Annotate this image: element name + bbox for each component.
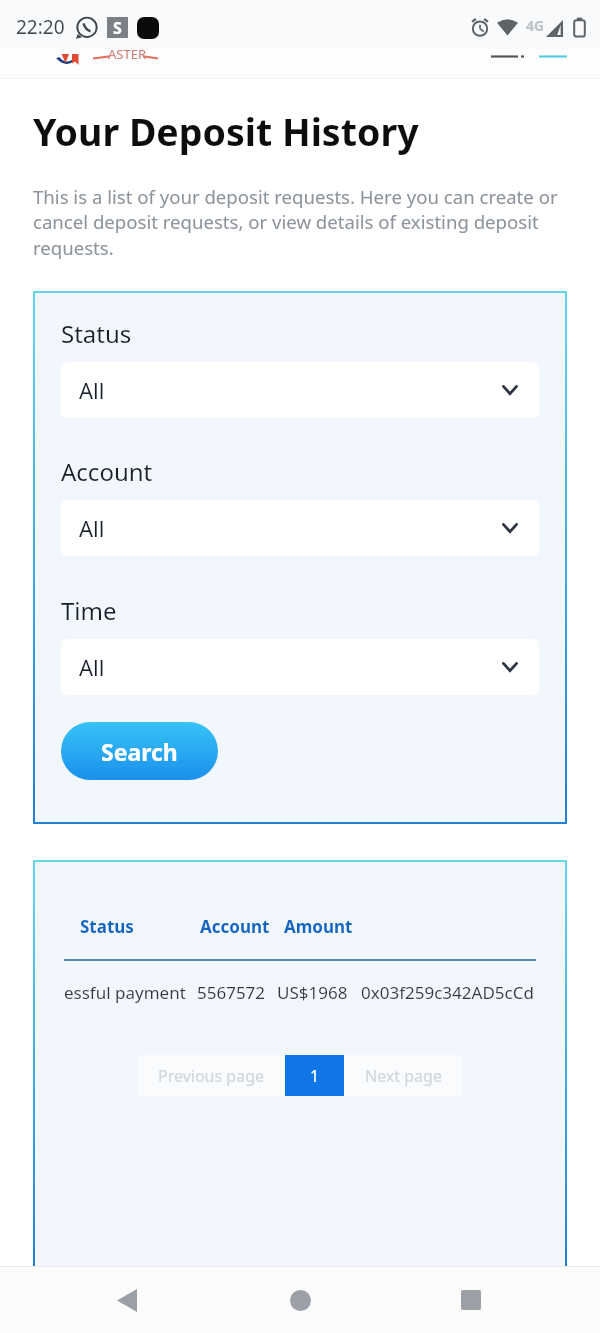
staticText: Time [61,594,117,627]
button[interactable]: Next page [344,1055,462,1096]
staticText: essful payment [64,981,197,1004]
staticText: All [79,652,105,682]
button[interactable]: Search [61,722,218,780]
staticText: Status [80,915,134,938]
button[interactable]: Home [270,1278,330,1322]
staticText: Account [61,455,153,488]
staticText: All [79,375,105,405]
staticText: 22:20 [16,14,65,40]
staticText: Status [61,317,132,350]
staticText: S [113,17,122,38]
staticText: This is a list of your deposit requests.… [33,184,600,260]
staticText: 0x03f259c342AD5cCd7 [361,981,537,1004]
staticText: Next page [365,1065,442,1087]
button[interactable]: All [61,500,539,556]
staticText: ASTER [108,45,146,63]
button[interactable]: 1 [285,1055,344,1096]
staticText: US$1968 [277,981,361,1004]
button[interactable]: Back [97,1278,157,1322]
button[interactable]: Recents [441,1278,501,1322]
staticText: 4G [526,16,545,35]
staticText: 1 [310,1065,320,1087]
staticText: Previous page [158,1065,265,1087]
staticText: Amount [284,915,353,938]
staticText: Account [200,915,270,938]
staticText: 5567572 [197,981,277,1004]
button[interactable]: Previous page [138,1055,285,1096]
staticText: Search [101,736,178,767]
button[interactable]: All [61,362,539,418]
staticText: All [79,513,105,543]
button[interactable]: All [61,639,539,695]
staticText: Your Deposit History [33,106,419,157]
